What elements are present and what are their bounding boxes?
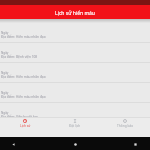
button[interactable]: Đặt lịch bbox=[50, 118, 100, 137]
staticText: Ngày bbox=[1, 51, 9, 55]
button[interactable]: Lịch sử bbox=[0, 118, 50, 137]
staticText: Đặt lịch bbox=[69, 124, 81, 128]
staticText: Địa điểm: Bệnh viện 108 bbox=[1, 55, 38, 59]
button[interactable]: Ngày bbox=[0, 43, 150, 63]
staticText: Địa điểm: Hiến máu nhân đạo bbox=[1, 75, 46, 79]
staticText: Ngày bbox=[1, 31, 9, 35]
button[interactable]: Ngày bbox=[0, 103, 150, 117]
staticText: Ngày bbox=[1, 111, 9, 115]
staticText: Lịch sử hiến máu bbox=[55, 10, 95, 17]
button[interactable]: Ngày bbox=[0, 83, 150, 103]
staticText: Địa điểm: Viện huyết học bbox=[1, 115, 39, 119]
staticText: Ngày bbox=[1, 91, 9, 95]
button[interactable]: Back bbox=[7, 138, 19, 150]
staticText: Thông báo bbox=[117, 124, 134, 128]
button[interactable]: Thông báo bbox=[100, 118, 150, 137]
button[interactable]: Ngày bbox=[0, 63, 150, 83]
staticText: Địa điểm: Hiến máu nhân đạo bbox=[1, 35, 46, 39]
button[interactable]: Ngày bbox=[0, 23, 150, 43]
button[interactable]: Home bbox=[69, 138, 81, 150]
button[interactable]: Recents bbox=[129, 138, 141, 150]
staticText: Lịch sử bbox=[20, 124, 31, 128]
staticText: Ngày bbox=[1, 71, 9, 75]
staticText: Địa điểm: Hiến máu nhân đạo bbox=[1, 95, 46, 99]
